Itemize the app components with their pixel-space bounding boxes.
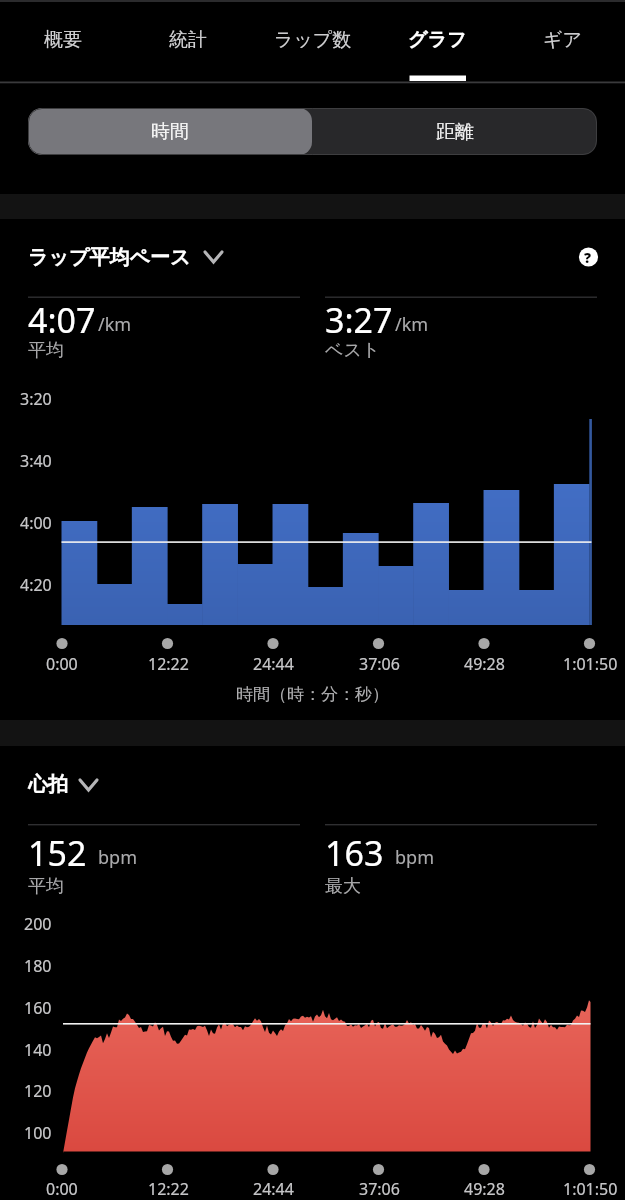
button[interactable]: 時間 — [28, 108, 312, 155]
button[interactable]: 統計 — [125, 0, 250, 80]
staticText: ベスト — [325, 339, 381, 362]
staticText: 距離 — [436, 120, 474, 144]
staticText: 200 — [24, 913, 52, 935]
staticText: 160 — [24, 997, 52, 1019]
staticText: 180 — [24, 955, 52, 977]
staticText: 0:00 — [46, 1178, 78, 1200]
staticText: 時間 — [151, 120, 189, 144]
staticText: 3:40 — [20, 450, 52, 472]
staticText: 心拍 — [28, 772, 68, 797]
staticText: 1:01:50 — [563, 653, 618, 675]
staticText: 120 — [24, 1080, 52, 1102]
staticText: 4:20 — [20, 574, 52, 596]
staticText: 時間（時：分：秒） — [236, 684, 389, 705]
button[interactable]: 概要 — [0, 0, 125, 80]
button[interactable] — [570, 239, 607, 276]
staticText: グラフ — [408, 28, 467, 52]
staticText: 24:44 — [253, 1178, 294, 1200]
staticText: 12:22 — [148, 653, 189, 675]
staticText: 163 — [325, 830, 384, 876]
staticText: 概要 — [44, 28, 82, 52]
staticText: 140 — [24, 1039, 52, 1061]
staticText: 12:22 — [148, 1178, 189, 1200]
staticText: ラップ平均ペース — [28, 245, 191, 270]
staticText: ギア — [543, 28, 582, 52]
staticText: 49:28 — [464, 1178, 505, 1200]
staticText: 平均 — [28, 875, 64, 898]
staticText: 4:00 — [20, 512, 52, 534]
button[interactable] — [24, 237, 234, 277]
staticText: 100 — [24, 1122, 52, 1144]
staticText: 1:01:50 — [563, 1178, 618, 1200]
staticText: 37:06 — [359, 653, 400, 675]
staticText: bpm — [395, 845, 434, 870]
staticText: 152 — [28, 830, 87, 876]
staticText: /km — [98, 312, 132, 337]
staticText: 3:20 — [20, 388, 52, 410]
staticText: /km — [395, 312, 429, 337]
button[interactable]: グラフ — [375, 0, 500, 80]
staticText: 24:44 — [253, 653, 294, 675]
button[interactable] — [24, 765, 114, 805]
button[interactable]: ラップ数 — [250, 0, 375, 80]
staticText: 平均 — [28, 339, 64, 362]
staticText: 最大 — [325, 875, 361, 898]
button[interactable]: ギア — [500, 0, 625, 80]
staticText: ラップ数 — [274, 28, 352, 52]
staticText: 3:27 — [325, 297, 393, 343]
staticText: ? — [584, 248, 592, 267]
staticText: bpm — [98, 845, 137, 870]
staticText: 49:28 — [464, 653, 505, 675]
staticText: 37:06 — [359, 1178, 400, 1200]
button[interactable]: 距離 — [312, 108, 597, 155]
staticText: 統計 — [169, 28, 207, 52]
staticText: 4:07 — [28, 297, 96, 343]
staticText: 0:00 — [46, 653, 78, 675]
